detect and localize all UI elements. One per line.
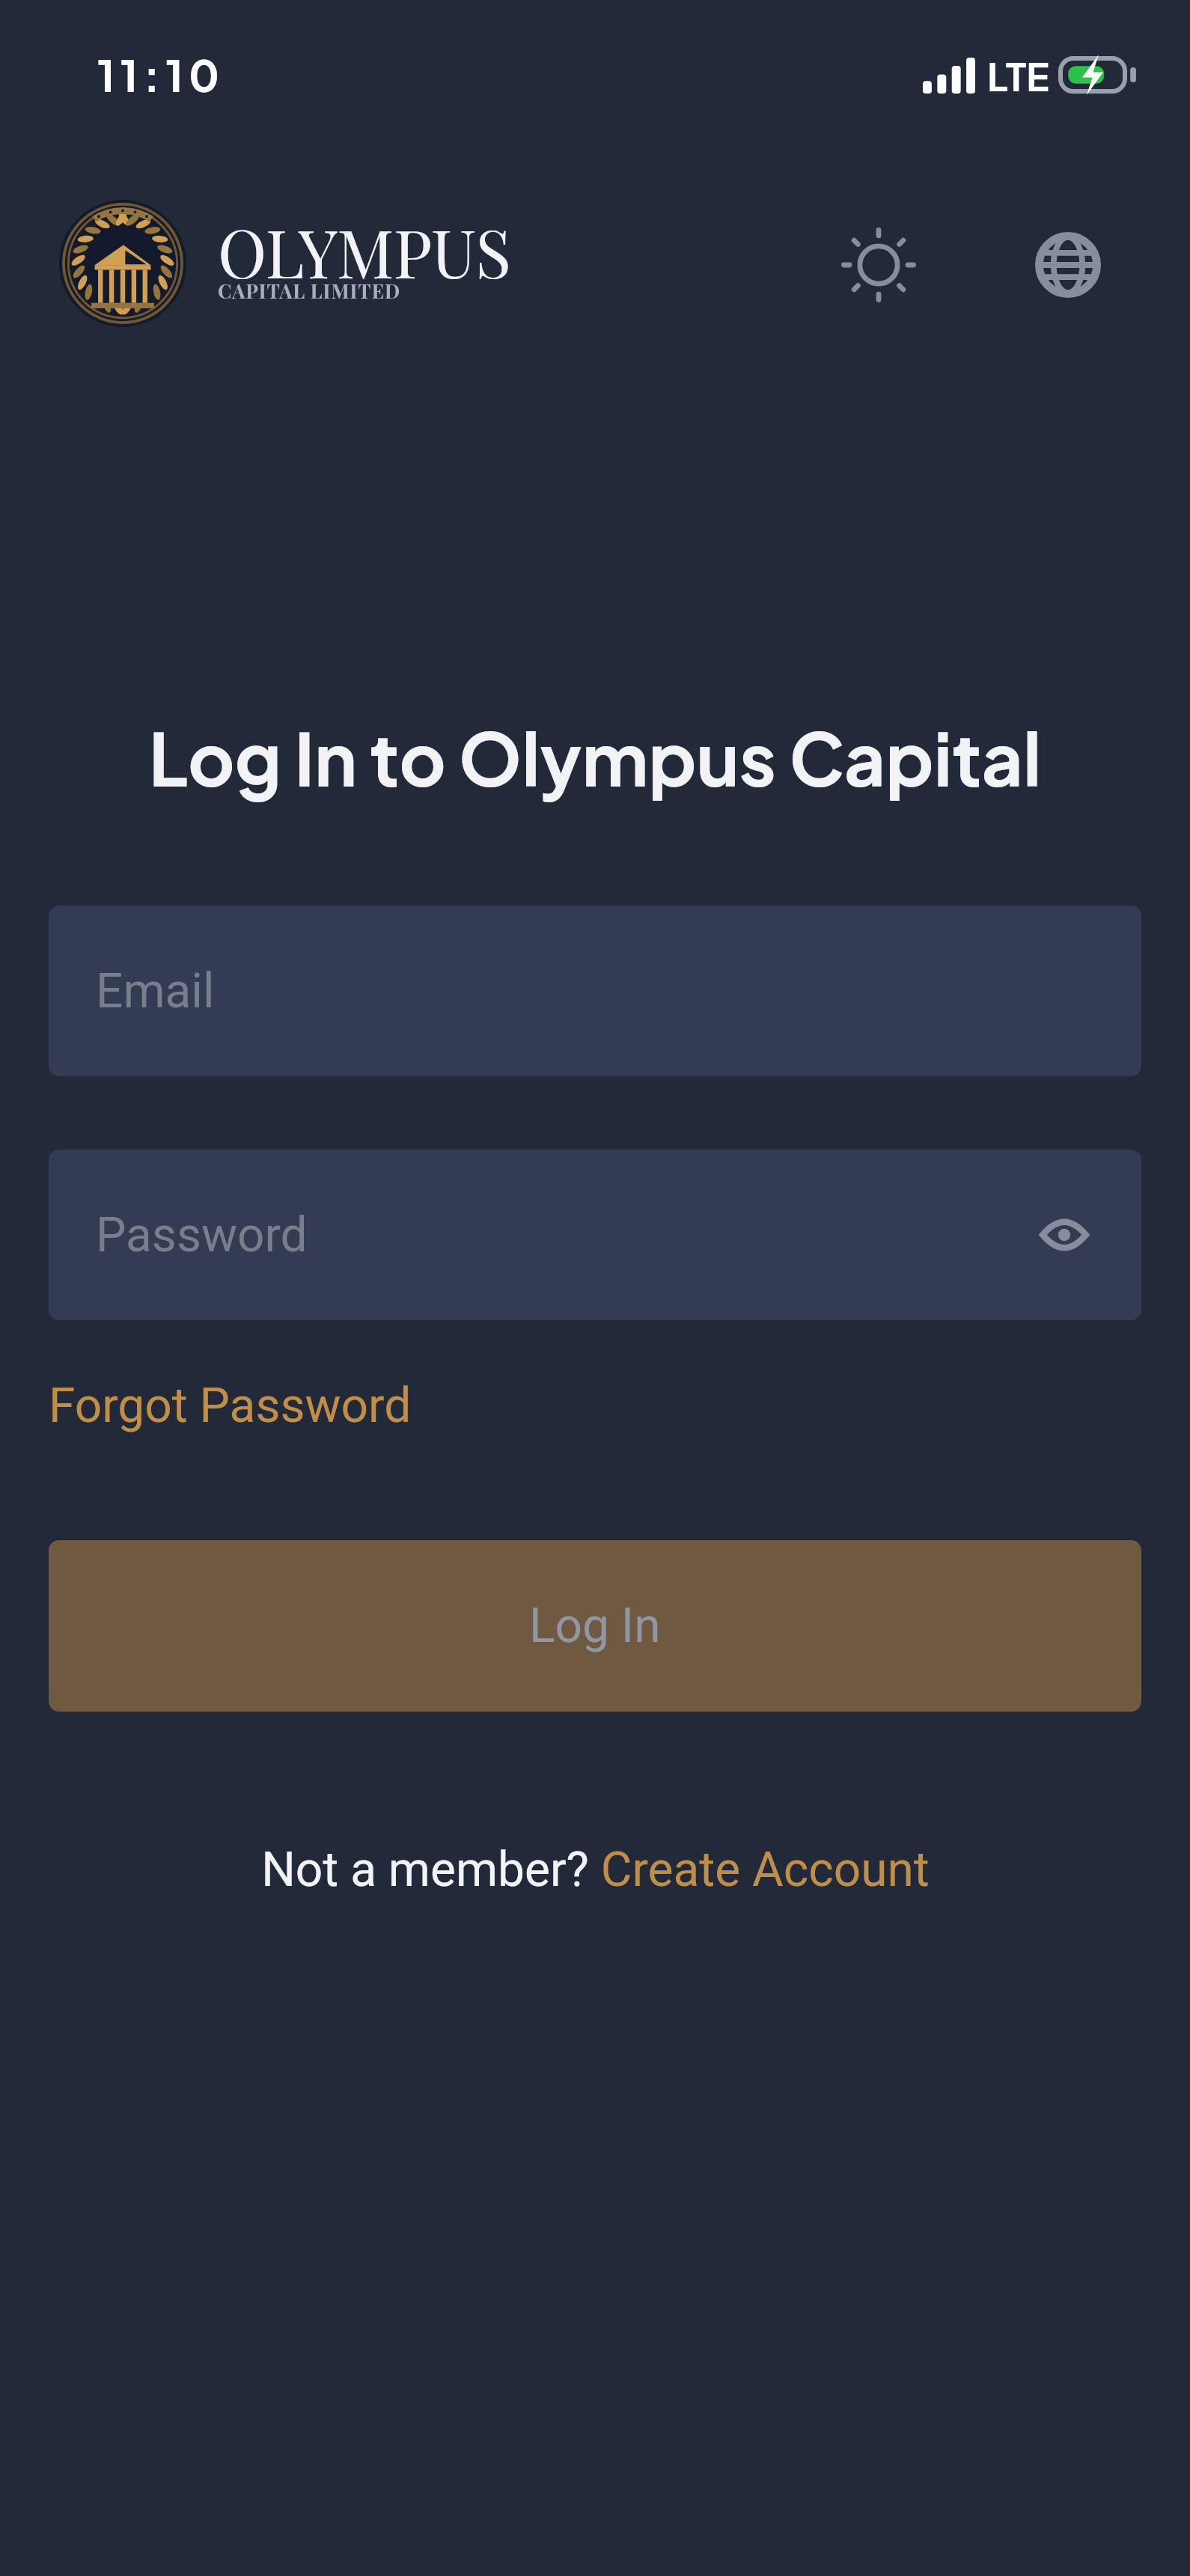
staticText: Log In [529, 1598, 661, 1654]
button[interactable]: Password [49, 1150, 1141, 1320]
button[interactable]: Show password [1027, 1197, 1102, 1272]
button[interactable]: Email [49, 906, 1141, 1076]
staticText: Email [96, 963, 215, 1019]
button[interactable]: Log In [49, 1540, 1141, 1712]
button[interactable]: Not a member? Create Account [261, 1842, 930, 1898]
staticText: CAPITAL LIMITED [218, 278, 401, 304]
staticText: Password [96, 1207, 308, 1263]
button[interactable]: Toggle theme [834, 220, 924, 310]
staticText: Forgot Password [49, 1378, 412, 1434]
staticText: LTE [987, 52, 1049, 100]
staticText: 11:10 [97, 47, 225, 102]
staticText: Log In to Olympus Capital [0, 712, 1190, 802]
staticText: OLYMPUS [218, 207, 510, 295]
button[interactable]: Change language [1023, 220, 1113, 310]
button[interactable]: Forgot Password [49, 1378, 412, 1434]
